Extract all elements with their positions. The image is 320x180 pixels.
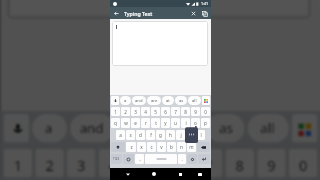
button[interactable]: a <box>116 130 125 140</box>
button[interactable]: Voice input <box>4 114 29 142</box>
button[interactable]: 2 <box>121 107 130 116</box>
button[interactable]: c <box>147 142 156 152</box>
button[interactable]: n <box>177 142 186 152</box>
button[interactable]: g <box>156 130 165 140</box>
staticText: u <box>174 120 177 126</box>
button[interactable]: Settings <box>187 154 197 164</box>
button[interactable]: s <box>126 130 135 140</box>
button[interactable]: as <box>206 114 244 142</box>
button[interactable]: Apps <box>202 96 210 105</box>
button[interactable]: all <box>248 114 289 142</box>
button[interactable]: u <box>171 118 180 128</box>
button[interactable]: Copy <box>199 8 210 19</box>
button[interactable]: 5 <box>130 149 159 177</box>
button[interactable]: 7 <box>194 149 222 177</box>
button[interactable]: 8 <box>181 107 190 116</box>
button[interactable]: h <box>166 130 175 140</box>
button[interactable]: as <box>175 96 187 105</box>
button[interactable]: Shift <box>111 142 125 152</box>
button[interactable]: Home <box>148 168 160 180</box>
button[interactable]: Clear <box>188 8 199 19</box>
button[interactable]: v <box>157 142 166 152</box>
button[interactable]: 0 <box>201 107 210 116</box>
staticText: 1 <box>114 109 117 115</box>
button[interactable]: 9 <box>191 107 200 116</box>
button[interactable]: w <box>121 118 130 128</box>
button[interactable]: k <box>186 130 195 140</box>
button[interactable]: e <box>131 118 140 128</box>
button[interactable]: p <box>201 118 210 128</box>
button[interactable]: y <box>161 118 170 128</box>
button[interactable]: and <box>70 114 115 142</box>
button[interactable]: , <box>135 154 144 164</box>
staticText: 7 <box>203 155 213 174</box>
staticText: a <box>124 98 127 104</box>
button[interactable]: o <box>191 118 200 128</box>
button[interactable]: 4 <box>141 107 150 116</box>
button[interactable]: r <box>141 118 150 128</box>
button[interactable]: 8 <box>225 149 254 177</box>
staticText: s <box>129 132 132 138</box>
button[interactable]: a <box>32 114 67 142</box>
button[interactable]: j <box>176 130 185 140</box>
button[interactable]: and <box>132 96 146 105</box>
button[interactable]: Back <box>122 168 134 180</box>
staticText: l <box>200 132 202 138</box>
button[interactable]: m <box>187 142 196 152</box>
button[interactable] <box>7 0 311 19</box>
button[interactable]: z <box>126 142 136 152</box>
button[interactable]: Recents <box>174 168 186 180</box>
staticText: Typing Text <box>124 10 153 17</box>
button[interactable]: . <box>178 154 186 164</box>
button[interactable]: 6 <box>162 149 191 177</box>
staticText: 2 <box>45 155 54 174</box>
staticText: , <box>139 156 141 162</box>
button[interactable]: 3 <box>67 149 95 177</box>
button[interactable]: 0 <box>289 149 317 177</box>
button[interactable]: q <box>111 118 120 128</box>
button[interactable]: t <box>151 118 160 128</box>
button[interactable]: 1 <box>111 107 120 116</box>
button[interactable]: b <box>167 142 176 152</box>
button[interactable]: are <box>147 96 161 105</box>
button[interactable]: 2 <box>35 149 64 177</box>
staticText: as <box>179 98 184 104</box>
button[interactable]: at <box>165 114 203 142</box>
button[interactable]: 7 <box>171 107 180 116</box>
button[interactable]: Enter <box>198 154 210 164</box>
button[interactable]: 5 <box>151 107 160 116</box>
staticText: at <box>178 120 191 139</box>
button[interactable]: 9 <box>257 149 286 177</box>
button[interactable]: 3 <box>131 107 140 116</box>
staticText: f <box>150 132 152 138</box>
button[interactable]: are <box>118 114 162 142</box>
staticText: . <box>181 156 183 162</box>
button[interactable]: Symbols <box>111 154 122 164</box>
staticText: as <box>219 120 235 139</box>
button[interactable]: Emoji <box>123 154 134 164</box>
button[interactable]: f <box>146 130 155 140</box>
button[interactable]: 1 <box>4 149 32 177</box>
staticText: 7 <box>174 109 177 115</box>
button[interactable]: 6 <box>161 107 170 116</box>
staticText: 6 <box>172 155 181 174</box>
button[interactable]: i <box>181 118 190 128</box>
button[interactable]: Apps <box>292 114 317 142</box>
button[interactable]: Voice input <box>111 96 119 105</box>
button[interactable]: 4 <box>99 149 127 177</box>
button[interactable]: at <box>162 96 174 105</box>
staticText: 1:41 <box>201 1 209 6</box>
button[interactable]: Back <box>110 7 122 19</box>
staticText: c <box>150 144 153 150</box>
button[interactable]: Keyboard <box>194 168 206 180</box>
button[interactable]: x <box>137 142 146 152</box>
button[interactable]: l <box>196 130 205 140</box>
button[interactable]: d <box>136 130 145 140</box>
staticText: and <box>135 98 143 104</box>
button[interactable]: a <box>120 96 131 105</box>
button[interactable]: Backspace <box>197 142 210 152</box>
button[interactable] <box>112 21 208 66</box>
button[interactable]: Space <box>145 154 177 164</box>
button[interactable]: all <box>188 96 201 105</box>
staticText: 9 <box>194 109 197 115</box>
